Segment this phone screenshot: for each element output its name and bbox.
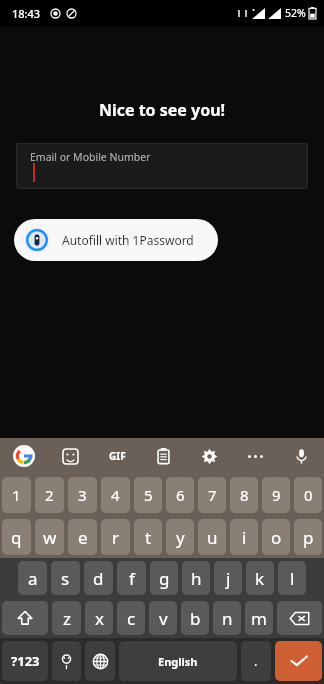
staticText: 4 xyxy=(111,485,120,505)
staticText: Nice to see you! xyxy=(0,99,324,121)
button[interactable]: r xyxy=(101,519,130,555)
button[interactable]: 5 xyxy=(134,477,162,513)
button[interactable]: n xyxy=(213,601,241,635)
button[interactable]: 1 xyxy=(2,477,31,513)
button[interactable]: q xyxy=(2,519,31,555)
button[interactable]: p xyxy=(294,519,322,555)
button[interactable]: j xyxy=(214,561,242,595)
button[interactable]: Backspace xyxy=(277,601,322,635)
button[interactable]: y xyxy=(166,519,194,555)
button[interactable]: e xyxy=(68,519,97,555)
staticText: i xyxy=(242,526,247,549)
button[interactable]: g xyxy=(150,561,178,595)
staticText: k xyxy=(255,567,265,590)
button[interactable]: 7 xyxy=(198,477,226,513)
staticText: v xyxy=(159,607,168,630)
button[interactable]: i xyxy=(230,519,258,555)
staticText: l xyxy=(290,567,295,590)
button[interactable]: More options xyxy=(232,438,278,474)
staticText: . xyxy=(254,652,258,670)
staticText: a xyxy=(28,567,38,590)
staticText: English xyxy=(158,654,198,669)
staticText: 6 xyxy=(176,485,185,505)
staticText: z xyxy=(63,607,71,630)
staticText: 7 xyxy=(208,485,217,505)
button[interactable]: l xyxy=(278,561,306,595)
button[interactable]: m xyxy=(245,601,273,635)
button[interactable]: ?123 xyxy=(2,641,48,681)
staticText: s xyxy=(61,567,70,590)
staticText: d xyxy=(93,567,104,590)
staticText: 3 xyxy=(78,485,87,505)
button[interactable]: Emoji xyxy=(52,641,81,681)
staticText: b xyxy=(190,607,201,630)
staticText: f xyxy=(129,567,135,590)
button[interactable]: t xyxy=(134,519,162,555)
button[interactable]: a xyxy=(18,561,47,595)
staticText: n xyxy=(222,607,233,630)
staticText: ?123 xyxy=(11,652,40,670)
button[interactable]: c xyxy=(117,601,145,635)
button[interactable]: k xyxy=(246,561,274,595)
button[interactable]: h xyxy=(182,561,210,595)
button[interactable]: Shift xyxy=(2,601,48,635)
staticText: 52% xyxy=(285,6,306,20)
button[interactable]: 0 xyxy=(294,477,322,513)
staticText: GIF xyxy=(109,449,126,463)
staticText: 8 xyxy=(240,485,249,505)
button[interactable]: 3 xyxy=(68,477,97,513)
staticText: w xyxy=(43,526,57,549)
button[interactable]: Clipboard xyxy=(140,438,186,474)
button[interactable]: 4 xyxy=(101,477,130,513)
staticText: 1 xyxy=(12,485,21,505)
staticText: 18:43 xyxy=(12,6,41,21)
staticText: q xyxy=(11,526,22,549)
button[interactable]: d xyxy=(84,561,113,595)
staticText: j xyxy=(226,567,231,590)
button[interactable]: Google Search xyxy=(0,438,47,474)
button[interactable]: Change language xyxy=(85,641,115,681)
staticText: h xyxy=(191,567,202,590)
button[interactable]: u xyxy=(198,519,226,555)
button[interactable]: b xyxy=(181,601,209,635)
staticText: 0 xyxy=(304,485,313,505)
button[interactable]: w xyxy=(35,519,64,555)
staticText: c xyxy=(127,607,136,630)
button[interactable]: English xyxy=(119,641,237,681)
staticText: t xyxy=(145,526,152,549)
staticText: x xyxy=(95,607,104,630)
button[interactable]: Stickers xyxy=(47,438,94,474)
button[interactable]: Settings xyxy=(186,438,232,474)
staticText: e xyxy=(78,526,88,549)
button[interactable]: 6 xyxy=(166,477,194,513)
staticText: r xyxy=(112,526,120,549)
staticText: 2 xyxy=(45,485,54,505)
button[interactable]: v xyxy=(149,601,177,635)
staticText: 9 xyxy=(272,485,281,505)
button[interactable]: 2 xyxy=(35,477,64,513)
staticText: g xyxy=(159,567,170,590)
staticText: Autofill with 1Password xyxy=(62,232,194,248)
button[interactable]: . xyxy=(241,641,271,681)
staticText: o xyxy=(271,526,282,549)
staticText: p xyxy=(303,526,314,549)
button[interactable]: 8 xyxy=(230,477,258,513)
button[interactable]: o xyxy=(262,519,290,555)
staticText: y xyxy=(176,526,185,549)
button[interactable]: Autofill with 1Password xyxy=(14,219,218,261)
button[interactable]: Email or Mobile Number xyxy=(16,143,308,189)
staticText: 5 xyxy=(144,485,153,505)
button[interactable]: s xyxy=(51,561,80,595)
staticText: m xyxy=(251,607,267,630)
staticText: Email or Mobile Number xyxy=(30,150,151,164)
button[interactable]: x xyxy=(85,601,113,635)
button[interactable]: f xyxy=(117,561,146,595)
button[interactable]: Enter xyxy=(275,641,322,681)
button[interactable]: GIF xyxy=(94,438,140,474)
staticText: u xyxy=(207,526,218,549)
button[interactable]: z xyxy=(52,601,81,635)
button[interactable]: Voice input xyxy=(278,438,324,474)
button[interactable]: 9 xyxy=(262,477,290,513)
